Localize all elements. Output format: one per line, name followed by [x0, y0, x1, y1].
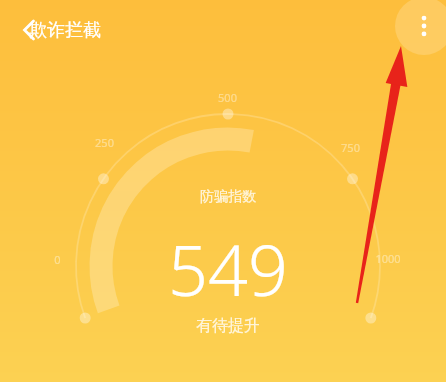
staticText: 1000: [375, 251, 401, 266]
staticText: 有待提升: [196, 316, 260, 336]
staticText: 500: [218, 90, 237, 105]
button[interactable]: Back: [6, 7, 52, 53]
staticText: 750: [341, 140, 360, 155]
button[interactable]: More options: [395, 0, 446, 55]
staticText: 欺诈拦截: [29, 19, 101, 42]
staticText: 0: [54, 252, 61, 267]
staticText: 250: [95, 135, 114, 150]
staticText: 549: [168, 221, 288, 313]
staticText: 防骗指数: [200, 188, 256, 206]
